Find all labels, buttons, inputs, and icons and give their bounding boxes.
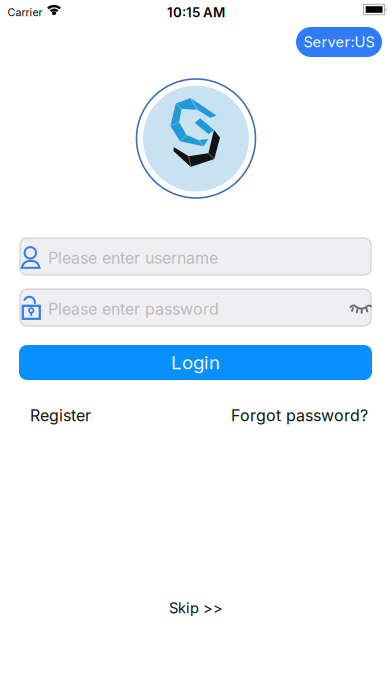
staticText: 10:15 AM bbox=[167, 4, 225, 20]
button[interactable]: Login bbox=[19, 345, 372, 380]
staticText: Login bbox=[171, 351, 220, 373]
staticText: Skip >> bbox=[169, 599, 223, 617]
staticText: Forgot password? bbox=[231, 406, 368, 425]
button[interactable]: Server:US bbox=[296, 27, 382, 57]
button[interactable]: Forgot password? bbox=[231, 406, 368, 425]
staticText: Server:US bbox=[303, 33, 374, 51]
staticText: Please enter username bbox=[48, 249, 218, 267]
staticText: Please enter password bbox=[48, 300, 219, 318]
button[interactable]: Please enter password bbox=[20, 289, 371, 326]
button[interactable]: Please enter username bbox=[20, 238, 371, 275]
button[interactable]: Register bbox=[30, 406, 91, 425]
staticText: Carrier bbox=[7, 6, 42, 19]
button[interactable]: Skip >> bbox=[169, 599, 223, 617]
staticText: Register bbox=[30, 406, 91, 425]
button[interactable] bbox=[348, 298, 374, 318]
